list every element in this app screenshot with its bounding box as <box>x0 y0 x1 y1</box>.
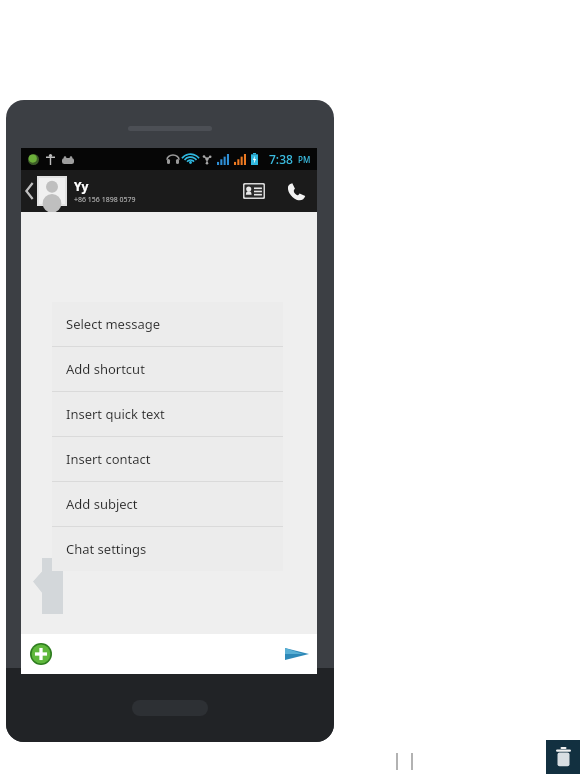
button[interactable]: Add shortcut <box>52 347 283 391</box>
button[interactable]: Insert quick text <box>52 392 283 436</box>
staticText: Add shortcut <box>66 360 145 378</box>
staticText: PM <box>298 154 311 165</box>
staticText: +86 156 1898 0579 <box>74 195 136 205</box>
staticText: Insert quick text <box>66 405 165 423</box>
button[interactable]: Yy <box>21 170 140 212</box>
staticText: Select message <box>66 315 161 333</box>
staticText: Add subject <box>66 495 138 513</box>
button[interactable]: Call <box>275 170 317 212</box>
staticText: Yy <box>74 178 89 194</box>
button[interactable]: Contact details <box>233 170 275 212</box>
button[interactable]: Select message <box>52 302 283 346</box>
button[interactable]: Add attachment <box>21 634 61 674</box>
button[interactable]: Add subject <box>52 482 283 526</box>
staticText: 7:38 <box>269 151 293 167</box>
button[interactable]: Chat settings <box>52 527 283 571</box>
staticText: Insert contact <box>66 450 151 468</box>
button[interactable]: Insert contact <box>52 437 283 481</box>
staticText: Chat settings <box>66 540 147 558</box>
button[interactable]: Send <box>277 634 317 674</box>
